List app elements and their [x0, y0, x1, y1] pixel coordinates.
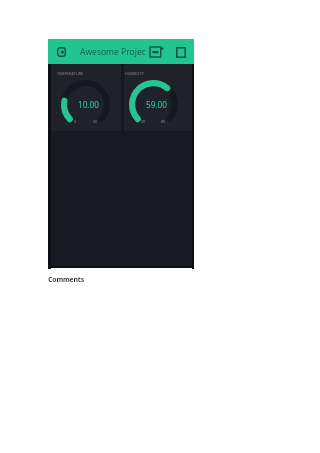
staticText: 0 [74, 119, 77, 124]
staticText: TEMPERATURE [57, 71, 84, 76]
staticText: 50 [93, 119, 98, 124]
button[interactable]: HUMIDITY [124, 64, 192, 131]
button[interactable]: Comments [48, 273, 85, 282]
staticText: Comments [48, 275, 85, 284]
button[interactable]: Menu [53, 44, 69, 60]
button[interactable]: Battery status [148, 44, 164, 60]
button[interactable]: More options [173, 44, 189, 60]
staticText: HUMIDITY [125, 71, 144, 76]
staticText: 80 [161, 119, 166, 124]
staticText: 59.00 [146, 99, 167, 110]
button[interactable]: TEMPERATURE [51, 64, 121, 131]
staticText: Awesome Project [80, 46, 145, 58]
button[interactable]: Awesome Project [80, 39, 145, 64]
staticText: 10.00 [78, 99, 99, 110]
staticText: 20 [141, 119, 146, 124]
